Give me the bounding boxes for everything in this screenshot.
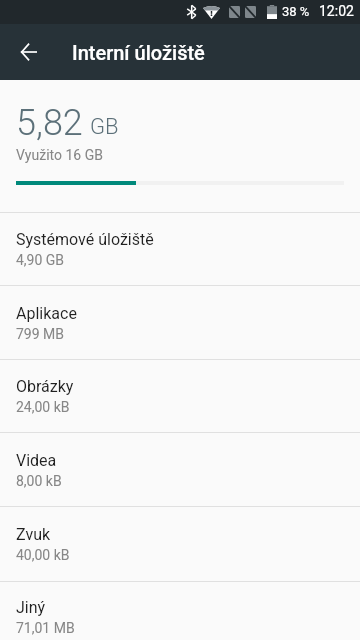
staticText: 71,01 MB [16,620,75,636]
staticText: Videa [16,451,57,470]
staticText: 8,00 kB [16,473,62,489]
staticText: Systémové úložiště [16,230,154,249]
button[interactable]: Aplikace [0,285,360,359]
staticText: 40,00 kB [16,547,70,563]
staticText: GB [90,114,119,140]
staticText: 799 MB [16,326,65,342]
button[interactable]: Videa [0,432,360,506]
staticText: 24,00 kB [16,399,70,415]
staticText: Obrázky [16,377,74,396]
button[interactable]: Obrázky [0,359,360,432]
button[interactable]: Zpět [8,32,48,72]
staticText: 4,90 GB [16,252,65,268]
staticText: 38 % [282,4,310,19]
button[interactable]: Zvuk [0,506,360,581]
button[interactable]: Systémové úložiště [0,212,360,285]
staticText: Interní úložiště [72,41,205,64]
staticText: Zvuk [16,525,51,544]
button[interactable]: Jiný [0,581,360,640]
staticText: 5,82 [16,102,83,144]
staticText: Využito 16 GB [16,147,103,163]
staticText: 12:02 [319,3,354,19]
staticText: Aplikace [16,304,77,323]
staticText: Jiný [16,598,46,617]
